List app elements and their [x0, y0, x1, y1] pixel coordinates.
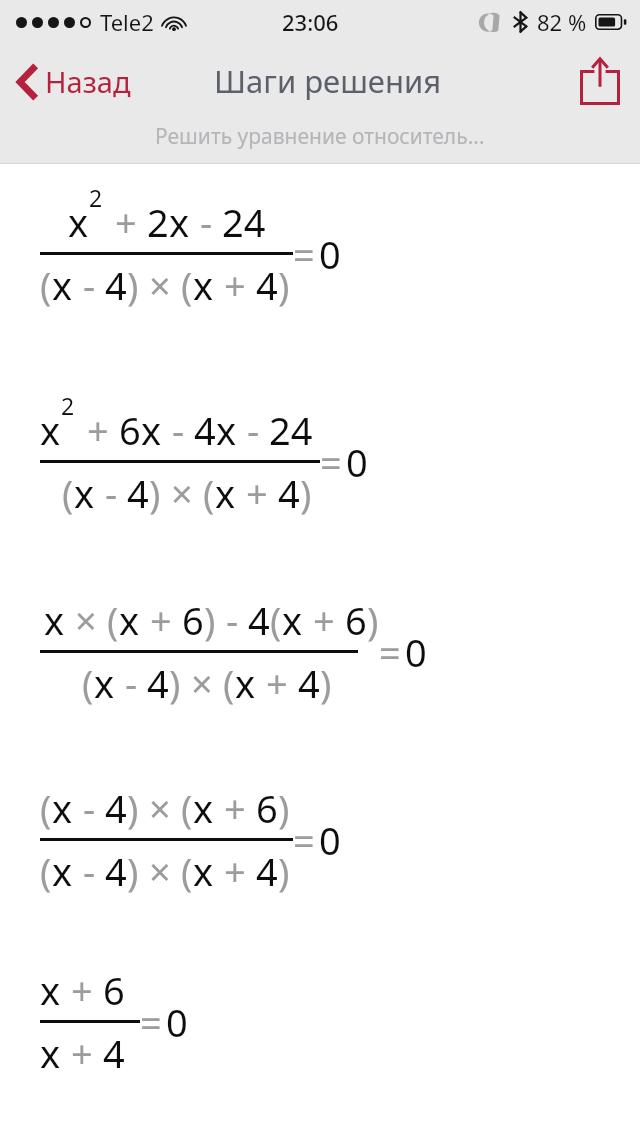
staticText: (: [223, 657, 235, 709]
staticText: 6: [119, 404, 141, 456]
staticText: 24: [222, 196, 266, 248]
staticText: +: [303, 594, 345, 646]
staticText: (: [107, 594, 119, 646]
staticText: +: [214, 845, 256, 897]
staticText: 4: [194, 404, 216, 456]
staticText: ×: [161, 467, 203, 519]
staticText: (: [40, 845, 52, 897]
staticText: ): [127, 782, 139, 834]
staticText: =: [293, 228, 315, 280]
staticText: ): [278, 782, 290, 834]
staticText: 2: [61, 390, 75, 421]
staticText: ): [127, 259, 139, 311]
staticText: Tele2: [100, 7, 154, 37]
staticText: +: [140, 594, 182, 646]
staticText: ×: [139, 259, 181, 311]
staticText: x: [52, 845, 73, 897]
staticText: +: [77, 404, 119, 456]
staticText: ×: [139, 782, 181, 834]
staticText: -: [237, 404, 269, 456]
staticText: ): [278, 845, 290, 897]
staticText: (: [82, 657, 94, 709]
staticText: -: [162, 404, 194, 456]
staticText: x: [40, 964, 61, 1016]
staticText: x: [216, 404, 237, 456]
staticText: ×: [139, 845, 181, 897]
staticText: -: [73, 782, 105, 834]
staticText: 0: [405, 626, 427, 678]
staticText: +: [214, 259, 256, 311]
staticText: 0: [319, 228, 341, 280]
staticText: 4: [103, 1027, 125, 1079]
staticText: 0: [166, 996, 188, 1048]
staticText: (: [62, 467, 74, 519]
staticText: x: [169, 196, 190, 248]
staticText: x: [68, 196, 89, 248]
staticText: 4: [105, 782, 127, 834]
staticText: 6: [182, 594, 204, 646]
staticText: -: [73, 259, 105, 311]
button[interactable]: Назад: [10, 56, 137, 107]
staticText: -: [95, 467, 127, 519]
staticText: ): [204, 594, 216, 646]
staticText: 4: [298, 657, 320, 709]
staticText: 4: [248, 594, 270, 646]
staticText: (: [181, 782, 193, 834]
staticText: -: [216, 594, 248, 646]
staticText: ): [278, 259, 290, 311]
staticText: (: [40, 259, 52, 311]
staticText: -: [73, 845, 105, 897]
staticText: +: [61, 964, 103, 1016]
staticText: Шаги решения: [214, 60, 442, 102]
staticText: x: [40, 1027, 61, 1079]
staticText: (: [270, 594, 282, 646]
staticText: 2: [89, 182, 103, 213]
staticText: 6: [103, 964, 125, 1016]
staticText: 23:06: [282, 7, 339, 37]
button[interactable]: Поделиться: [574, 51, 626, 111]
staticText: 0: [346, 436, 368, 488]
staticText: 4: [105, 845, 127, 897]
staticText: x: [52, 259, 73, 311]
staticText: =: [140, 996, 162, 1048]
staticText: (: [203, 467, 215, 519]
staticText: ×: [65, 594, 107, 646]
staticText: ): [127, 845, 139, 897]
staticText: Назад: [45, 62, 131, 101]
staticText: x: [94, 657, 115, 709]
staticText: x: [52, 782, 73, 834]
staticText: 4: [256, 259, 278, 311]
staticText: ): [149, 467, 161, 519]
staticText: x: [193, 259, 214, 311]
staticText: 4: [256, 845, 278, 897]
staticText: x: [193, 782, 214, 834]
staticText: 82 %: [537, 7, 587, 37]
staticText: =: [293, 814, 315, 866]
staticText: -: [190, 196, 222, 248]
staticText: Решить уравнение относитель...: [155, 122, 485, 151]
staticText: -: [115, 657, 147, 709]
staticText: ): [169, 657, 181, 709]
staticText: x: [235, 657, 256, 709]
staticText: =: [379, 626, 401, 678]
staticText: x: [141, 404, 162, 456]
staticText: (: [181, 259, 193, 311]
staticText: +: [61, 1027, 103, 1079]
staticText: 6: [345, 594, 367, 646]
staticText: 4: [105, 259, 127, 311]
staticText: x: [215, 467, 236, 519]
staticText: ): [367, 594, 379, 646]
staticText: x: [193, 845, 214, 897]
staticText: (: [181, 845, 193, 897]
staticText: ×: [181, 657, 223, 709]
staticText: 4: [278, 467, 300, 519]
staticText: +: [236, 467, 278, 519]
staticText: x: [44, 594, 65, 646]
staticText: (: [40, 782, 52, 834]
staticText: =: [320, 436, 342, 488]
staticText: 4: [147, 657, 169, 709]
staticText: ): [300, 467, 312, 519]
staticText: 24: [269, 404, 313, 456]
staticText: +: [105, 196, 147, 248]
staticText: +: [256, 657, 298, 709]
